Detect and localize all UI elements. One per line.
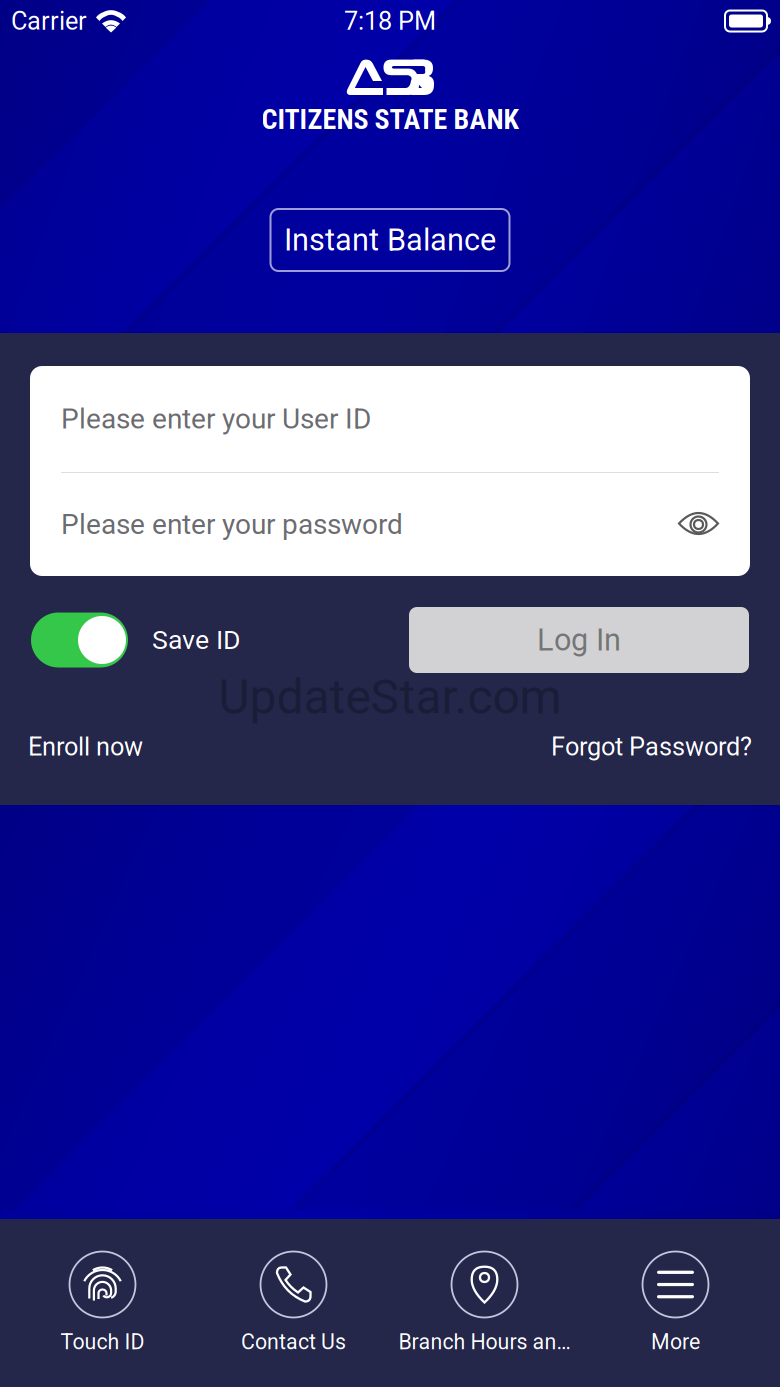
button[interactable]: More	[580, 1251, 771, 1354]
button[interactable]: Save ID	[31, 612, 241, 667]
staticText: CITIZENS STATE BANK	[261, 103, 518, 136]
button[interactable]: Instant Balance	[270, 209, 509, 271]
staticText: UpdateStar.com	[218, 669, 561, 725]
staticText: Branch Hours an…	[398, 1329, 570, 1354]
button[interactable]: Contact Us	[198, 1251, 389, 1354]
staticText: Enroll now	[28, 732, 143, 762]
button[interactable]: Forgot Password?	[551, 732, 752, 762]
staticText: Please enter your User ID	[61, 403, 371, 435]
staticText: Log In	[537, 622, 621, 658]
button[interactable]: Branch Hours an…	[389, 1251, 580, 1354]
staticText: More	[651, 1329, 700, 1354]
button[interactable]: Log In	[409, 607, 749, 673]
button[interactable]: Enroll now	[28, 732, 143, 762]
staticText: Touch ID	[60, 1329, 144, 1354]
staticText: Forgot Password?	[551, 732, 752, 762]
button[interactable]: Touch ID	[7, 1251, 198, 1354]
staticText: Please enter your password	[61, 508, 403, 541]
staticText: Save ID	[152, 624, 241, 656]
staticText: Carrier	[11, 6, 87, 36]
staticText: Instant Balance	[284, 222, 496, 258]
staticText: Contact Us	[241, 1329, 346, 1354]
staticText: 7:18 PM	[344, 6, 436, 36]
button[interactable]: Show password	[678, 509, 719, 539]
